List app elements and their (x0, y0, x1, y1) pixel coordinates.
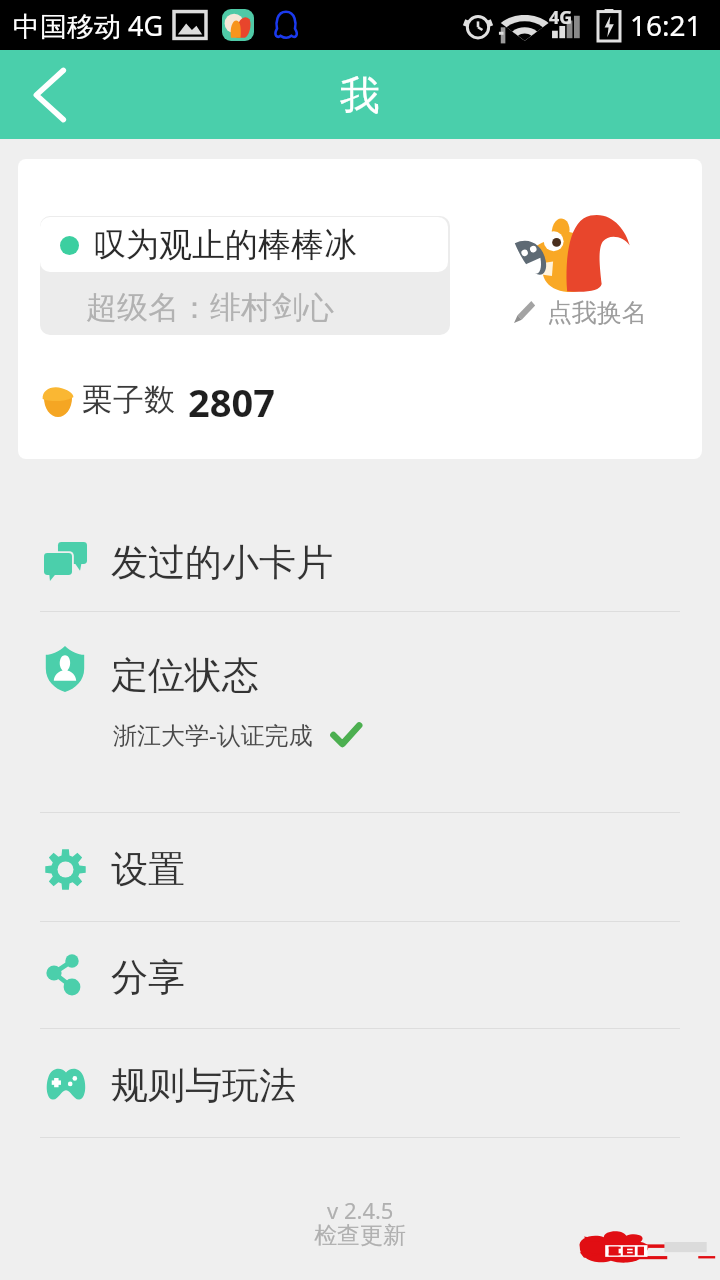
staticText: 定位状态 (111, 652, 259, 699)
staticText: 规则与玩法 (111, 1062, 296, 1109)
button[interactable]: 点我换名 (507, 296, 647, 328)
button[interactable]: 发过的小卡片 (0, 509, 720, 611)
staticText: v 2.4.5 (327, 1195, 394, 1225)
staticText: 我 (340, 70, 380, 120)
staticText: 超级名：绯村剑心 (86, 288, 334, 327)
staticText: 点我换名 (547, 297, 647, 328)
staticText: 中国移动 4G (13, 7, 164, 44)
staticText: 栗子数 (82, 380, 175, 419)
staticText: 设置 (111, 846, 185, 893)
button[interactable]: 分享 (0, 922, 720, 1028)
staticText: 浙江大学-认证完成 (113, 718, 313, 751)
button[interactable]: 叹为观止的棒棒冰 (40, 217, 448, 272)
button[interactable]: 设置 (0, 813, 720, 921)
staticText: 叹为观止的棒棒冰 (93, 224, 357, 266)
staticText: 分享 (111, 954, 185, 1001)
staticText: 16:21 (630, 6, 702, 44)
staticText: 2807 (188, 376, 275, 428)
button[interactable]: 定位状态 (0, 612, 720, 812)
staticText: 检查更新 (314, 1221, 406, 1250)
staticText: 发过的小卡片 (111, 539, 333, 586)
staticText: 4G (549, 5, 573, 30)
button[interactable]: 规则与玩法 (0, 1029, 720, 1137)
button[interactable]: Back (0, 50, 100, 139)
